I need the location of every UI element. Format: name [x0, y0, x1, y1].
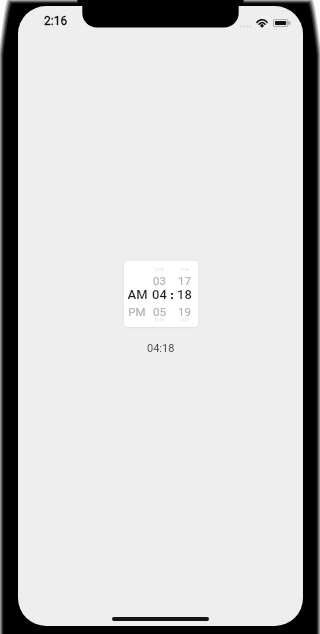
other: Cellular signal — [240, 25, 253, 28]
staticText: AM — [127, 287, 148, 302]
button[interactable]: AM — [124, 261, 198, 327]
staticText: 03 — [153, 274, 166, 287]
staticText: 04:18 — [147, 342, 175, 355]
staticText: 2:16 — [44, 14, 68, 28]
staticText: 18 — [177, 287, 192, 302]
staticText: 06 — [154, 318, 165, 322]
staticText: 16 — [179, 268, 190, 272]
staticText: 05 — [153, 305, 166, 318]
staticText: 20 — [179, 318, 190, 322]
staticText: PM — [128, 305, 146, 318]
staticText: 02 — [154, 268, 165, 272]
staticText: 19 — [178, 305, 191, 318]
other: Battery — [273, 19, 291, 27]
staticText: 17 — [178, 274, 191, 287]
staticText: 04 — [152, 287, 167, 302]
other: Wi-Fi — [256, 19, 268, 27]
